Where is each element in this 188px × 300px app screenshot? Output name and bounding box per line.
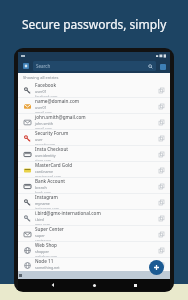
- staticText: user.identity: [35, 153, 56, 158]
- staticText: shopper: [35, 249, 50, 254]
- button[interactable]: name@domain.com: [18, 98, 170, 113]
- staticText: center.org: [35, 238, 52, 241]
- staticText: user: [35, 137, 43, 142]
- button[interactable]: Instagram: [18, 194, 170, 209]
- staticText: Node 11: [35, 258, 54, 264]
- button[interactable]: Copy password: [156, 101, 166, 111]
- staticText: super: [35, 233, 45, 238]
- staticText: Secure passwords, simply: [22, 16, 167, 32]
- button[interactable]: Bank Account: [18, 178, 170, 193]
- staticText: Instagram: [35, 194, 58, 200]
- button[interactable]: Copy password: [156, 260, 166, 270]
- staticText: Web Shop: [35, 242, 57, 248]
- staticText: user01: [35, 105, 47, 110]
- other: Search: [148, 64, 153, 69]
- staticText: facebook.com: [35, 94, 58, 97]
- button[interactable]: Open navigation: [21, 61, 31, 71]
- staticText: security.com: [35, 142, 56, 145]
- staticText: user01: [35, 89, 47, 94]
- staticText: Security Forum: [35, 130, 69, 136]
- button[interactable]: Add entry: [149, 260, 164, 275]
- button[interactable]: Copy password: [156, 181, 166, 191]
- staticText: card.name: [35, 169, 53, 174]
- staticText: name@domain.com: [35, 98, 80, 104]
- button[interactable]: Insta Checkout: [18, 146, 170, 161]
- button[interactable]: Account: [158, 62, 167, 71]
- staticText: Showing all entries: [23, 75, 59, 80]
- staticText: myname: [35, 201, 50, 206]
- button[interactable]: Recent apps: [129, 279, 141, 291]
- staticText: john.smith: [35, 121, 54, 126]
- staticText: mastercard.com: [35, 174, 61, 177]
- staticText: Insta Checkout: [35, 146, 69, 152]
- staticText: john.smith@gmail.com: [35, 114, 86, 120]
- staticText: branch: [35, 185, 47, 190]
- staticText: MasterCard Gold: [35, 162, 73, 168]
- staticText: Search: [36, 63, 51, 69]
- button[interactable]: MasterCard Gold: [18, 162, 170, 177]
- staticText: gmx.com: [35, 222, 50, 225]
- button[interactable]: Copy password: [156, 229, 166, 239]
- button[interactable]: Back: [47, 279, 59, 291]
- button[interactable]: Copy password: [156, 133, 166, 143]
- button[interactable]: Node 11: [18, 258, 170, 271]
- button[interactable]: Copy password: [156, 117, 166, 127]
- staticText: gmail.com: [35, 110, 52, 113]
- button[interactable]: Search: [33, 61, 156, 71]
- staticText: Bank Account: [35, 178, 66, 184]
- button[interactable]: Copy password: [156, 213, 166, 223]
- button[interactable]: Facebook: [18, 82, 170, 97]
- staticText: Super Center: [35, 226, 64, 232]
- staticText: gmail.com: [35, 126, 52, 129]
- button[interactable]: i.bird@gmx-international.com: [18, 210, 170, 225]
- button[interactable]: john.smith@gmail.com: [18, 114, 170, 129]
- button[interactable]: Copy password: [156, 85, 166, 95]
- button[interactable]: Super Center: [18, 226, 170, 241]
- staticText: store.com: [35, 158, 51, 161]
- button[interactable]: Copy password: [156, 149, 166, 159]
- button[interactable]: Web Shop: [18, 242, 170, 257]
- staticText: instagram.com: [35, 206, 59, 209]
- staticText: i.bird@gmx-international.com: [35, 210, 101, 216]
- button[interactable]: Copy password: [156, 197, 166, 207]
- staticText: something.net: [35, 265, 60, 270]
- staticText: i.bird: [35, 217, 44, 222]
- staticText: bank.com: [35, 190, 51, 193]
- button[interactable]: Security Forum: [18, 130, 170, 145]
- button[interactable]: Copy password: [156, 165, 166, 175]
- button[interactable]: Home: [88, 279, 100, 291]
- button[interactable]: Copy password: [156, 245, 166, 255]
- staticText: Facebook: [35, 82, 56, 88]
- staticText: webshop.com: [35, 254, 58, 257]
